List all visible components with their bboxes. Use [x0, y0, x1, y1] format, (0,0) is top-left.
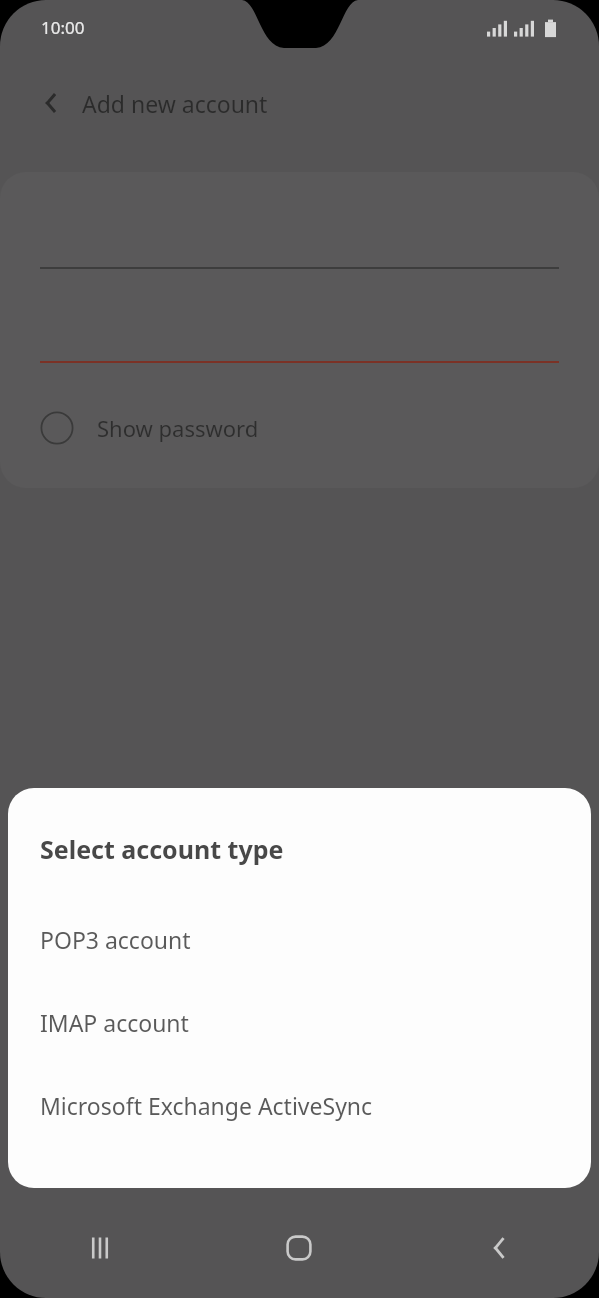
staticText: 10:00 [41, 16, 85, 39]
button[interactable]: Back [30, 81, 74, 125]
button[interactable]: POP3 account [8, 898, 591, 981]
staticText: IMAP account [40, 1007, 189, 1038]
button[interactable]: Recent apps [0, 1212, 199, 1284]
button[interactable]: Back [399, 1212, 599, 1284]
button[interactable]: Home [199, 1212, 399, 1284]
button[interactable]: Show password [0, 400, 599, 456]
button[interactable]: Microsoft Exchange ActiveSync [8, 1064, 591, 1147]
staticText: Show password [97, 413, 259, 443]
staticText: Microsoft Exchange ActiveSync [40, 1090, 373, 1121]
staticText: Add new account [82, 88, 268, 119]
button[interactable]: IMAP account [8, 981, 591, 1064]
staticText: POP3 account [40, 924, 191, 955]
staticText: Select account type [40, 832, 284, 866]
